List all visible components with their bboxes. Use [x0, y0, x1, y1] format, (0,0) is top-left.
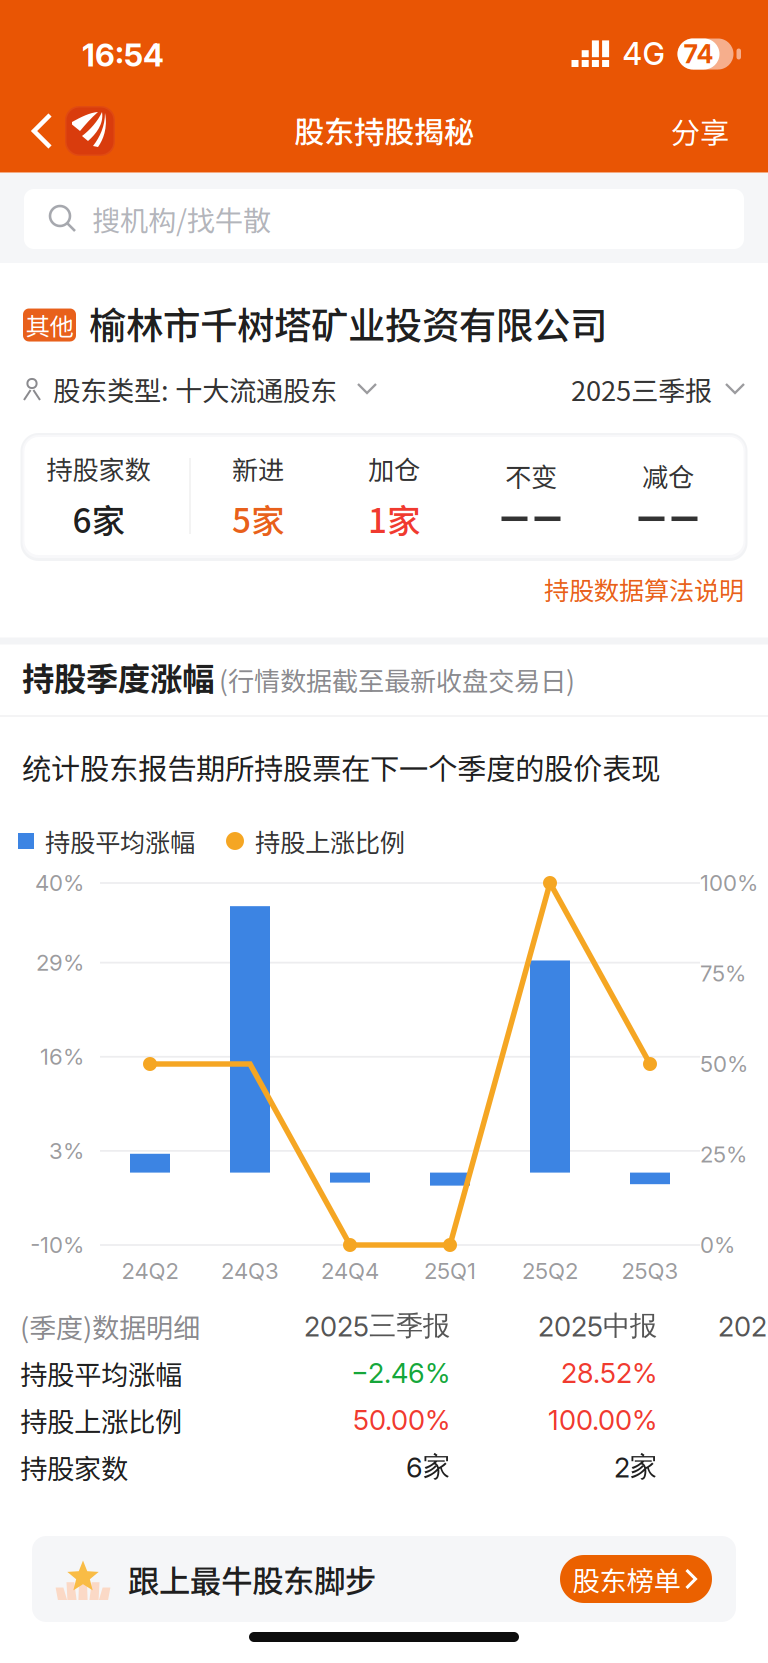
staticText: 2025三季报 [304, 1309, 450, 1343]
staticText: 0% [700, 1232, 735, 1258]
staticText: 16% [40, 1043, 84, 1070]
staticText: 不变 [505, 456, 557, 494]
staticText: 29% [36, 949, 84, 976]
staticText: 28.52% [561, 1356, 657, 1389]
staticText: 25Q1 [424, 1258, 476, 1284]
staticText: 75% [700, 960, 746, 987]
staticText: 24Q3 [221, 1258, 279, 1284]
staticText: (季度)数据明细 [20, 1306, 200, 1346]
staticText: 加仓 [368, 449, 420, 487]
staticText: 持股季度涨幅 [22, 654, 214, 700]
staticText: 持股家数 [46, 449, 150, 487]
staticText: 榆林市千树塔矿业投资有限公司 [89, 296, 607, 350]
button[interactable]: 股东榜单 [560, 1555, 712, 1603]
staticText: 股东类型: 十大流通股东 [53, 369, 337, 409]
staticText: 股东持股揭秘 [294, 108, 474, 152]
staticText: 4G [622, 36, 664, 72]
staticText: 持股上涨比例 [20, 1400, 182, 1440]
button[interactable]: 持股数据算法说明 [544, 567, 744, 611]
staticText: 2025一季报 [718, 1309, 768, 1343]
staticText: 25% [700, 1141, 747, 1168]
button[interactable]: 返回 [0, 92, 132, 170]
staticText: 6家 [72, 494, 124, 543]
staticText: (行情数据截至最新收盘交易日) [219, 661, 575, 699]
staticText: 50.00% [353, 1403, 450, 1436]
staticText: 减仓 [642, 456, 694, 494]
staticText: 2家 [614, 1450, 657, 1484]
staticText: 2025三季报 [571, 369, 712, 409]
staticText: 25Q3 [621, 1258, 678, 1284]
staticText: 100.00% [548, 1403, 657, 1436]
staticText: 1家 [368, 494, 420, 543]
staticText: 新进 [232, 449, 284, 487]
staticText: 3% [49, 1137, 84, 1164]
staticText: −2.46% [351, 1356, 450, 1389]
staticText: 持股平均涨幅 [45, 823, 195, 859]
staticText: 持股家数 [20, 1447, 128, 1487]
staticText: 持股上涨比例 [255, 823, 405, 859]
staticText: 股东榜单 [572, 1559, 680, 1599]
staticText: 74 [683, 39, 713, 69]
staticText: 24Q2 [121, 1258, 178, 1284]
staticText: -10% [30, 1232, 84, 1258]
staticText: 持股数据算法说明 [544, 571, 744, 607]
staticText: 40% [35, 870, 84, 896]
staticText: 统计股东报告期所持股票在下一个季度的股价表现 [22, 746, 660, 788]
staticText: 其他 [25, 307, 73, 342]
staticText: 5家 [232, 494, 284, 543]
staticText: 6家 [406, 1450, 450, 1484]
staticText: 跟上最牛股东脚步 [128, 1556, 376, 1602]
staticText: 100% [700, 870, 758, 896]
staticText: 25Q2 [522, 1258, 578, 1284]
button[interactable]: 搜机构/找牛散 [24, 189, 744, 249]
staticText: 搜机构/找牛散 [92, 198, 271, 239]
staticText: 持股平均涨幅 [20, 1353, 182, 1393]
button[interactable]: 分享 [645, 96, 755, 166]
button[interactable]: 2025三季报 [571, 364, 746, 414]
staticText: 24Q4 [321, 1258, 379, 1284]
staticText: 分享 [671, 110, 729, 152]
staticText: 2025中报 [538, 1309, 657, 1343]
button[interactable]: 股东类型: 十大流通股东 [22, 364, 378, 414]
staticText: 16:54 [82, 36, 164, 74]
staticText: 50% [700, 1051, 748, 1077]
